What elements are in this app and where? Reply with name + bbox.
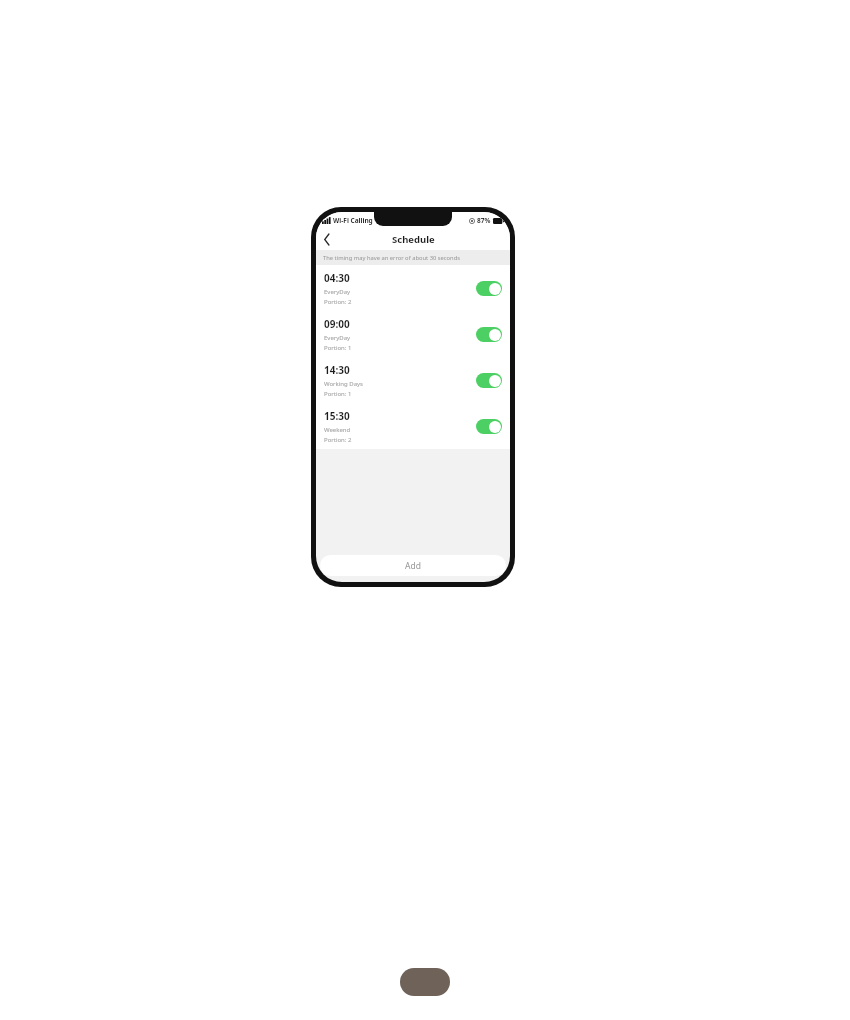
- staticText: Schedule: [392, 233, 435, 246]
- staticText: Weekend: [324, 426, 351, 434]
- staticText: Portion: 2: [324, 298, 352, 306]
- staticText: The timing may have an error of about 30…: [323, 254, 461, 262]
- button[interactable]: Back: [316, 228, 338, 250]
- staticText: EveryDay: [324, 288, 351, 296]
- button[interactable]: 14:30: [316, 357, 510, 403]
- staticText: 09:00: [324, 317, 350, 331]
- button[interactable]: 15:30: [316, 403, 510, 449]
- staticText: Wi-Fi Calling: [333, 216, 373, 225]
- staticText: Portion: 1: [324, 390, 352, 398]
- button[interactable]: Toggle schedule: [476, 281, 502, 296]
- staticText: Working Days: [324, 380, 363, 388]
- staticText: Add: [405, 560, 421, 572]
- button[interactable]: 04:30: [316, 265, 510, 311]
- button[interactable]: Toggle schedule: [476, 419, 502, 434]
- staticText: 14:30: [324, 363, 350, 377]
- staticText: 87%: [477, 216, 491, 225]
- button[interactable]: Add: [320, 555, 506, 576]
- staticText: Portion: 1: [324, 344, 352, 352]
- staticText: 15:30: [324, 409, 350, 423]
- button[interactable]: Toggle schedule: [476, 327, 502, 342]
- staticText: 04:30: [324, 271, 350, 285]
- button[interactable]: 09:00: [316, 311, 510, 357]
- staticText: Portion: 2: [324, 436, 352, 444]
- staticText: EveryDay: [324, 334, 351, 342]
- button[interactable]: Toggle schedule: [476, 373, 502, 388]
